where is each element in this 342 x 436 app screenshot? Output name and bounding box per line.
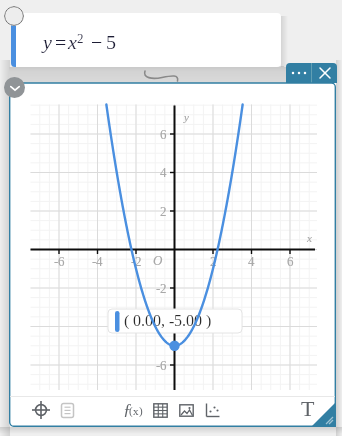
button[interactable]: y = x squared minus 5 <box>11 13 281 67</box>
button[interactable]: Text <box>294 396 320 422</box>
button[interactable]: Table <box>148 398 172 422</box>
button[interactable]: Image <box>174 398 198 422</box>
button[interactable]: Notes <box>55 398 79 422</box>
button[interactable]: More options <box>286 63 311 83</box>
button[interactable]: Drag handle <box>4 6 24 26</box>
button[interactable]: Statistics <box>200 398 224 422</box>
button[interactable]: Collapse <box>4 77 25 98</box>
button[interactable]: Close <box>312 63 337 83</box>
button[interactable]: Function <box>120 398 144 422</box>
button[interactable]: Pan and zoom <box>29 398 53 422</box>
